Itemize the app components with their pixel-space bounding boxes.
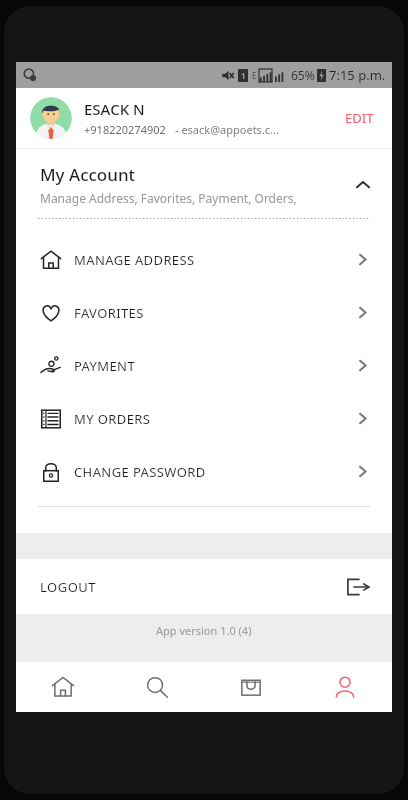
button[interactable]: My Account: [16, 149, 392, 214]
staticText: +918220274902: [84, 122, 166, 137]
button[interactable]: MY ORDERS: [16, 392, 392, 445]
button[interactable]: CHANGE PASSWORD: [16, 445, 392, 498]
button[interactable]: ESACK N: [16, 88, 392, 148]
staticText: 1: [241, 70, 246, 81]
button[interactable]: EDIT: [341, 103, 378, 133]
other: Collapse: [354, 176, 372, 194]
button[interactable]: Profile: [298, 662, 392, 712]
staticText: 7:15 p.m.: [329, 66, 386, 84]
button[interactable]: FAVORITES: [16, 286, 392, 339]
staticText: EDIT: [345, 109, 374, 127]
staticText: Manage Address, Favorites, Payment, Orde…: [40, 190, 297, 206]
staticText: 65%: [291, 67, 315, 83]
staticText: My Account: [40, 163, 136, 186]
staticText: PAYMENT: [74, 357, 355, 375]
button[interactable]: PAYMENT: [16, 339, 392, 392]
staticText: ESACK N: [84, 99, 145, 119]
staticText: MANAGE ADDRESS: [74, 251, 355, 269]
staticText: LOGOUT: [40, 578, 346, 596]
staticText: MY ORDERS: [74, 410, 355, 428]
staticText: E: [252, 70, 257, 81]
staticText: CHANGE PASSWORD: [74, 463, 355, 481]
staticText: App version 1.0 (4): [156, 623, 252, 638]
staticText: - esack@appoets.c...: [175, 122, 279, 137]
button[interactable]: Cart: [204, 662, 298, 712]
button[interactable]: MANAGE ADDRESS: [16, 233, 392, 286]
button[interactable]: LOGOUT: [16, 559, 392, 614]
other: Logout: [346, 575, 370, 599]
button[interactable]: Home: [16, 662, 110, 712]
staticText: FAVORITES: [74, 304, 355, 322]
button[interactable]: Search: [110, 662, 204, 712]
